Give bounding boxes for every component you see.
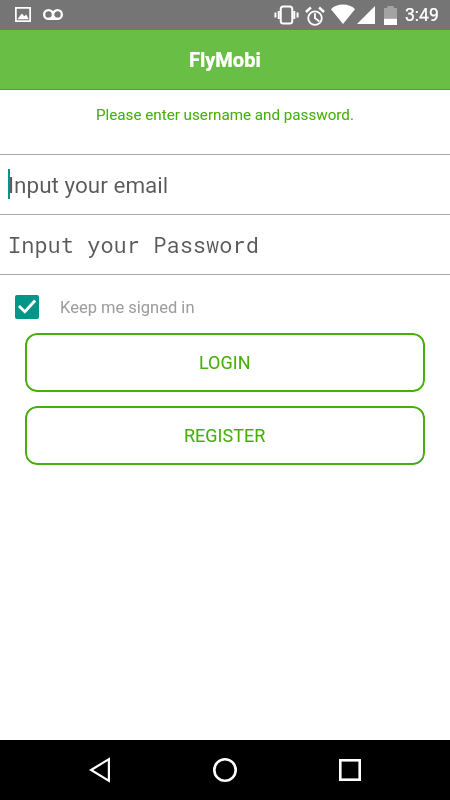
staticText: Please enter username and password.: [96, 106, 354, 124]
staticText: Input your email: [8, 172, 169, 198]
button[interactable]: LOGIN: [25, 333, 425, 392]
button[interactable]: Keep me signed in: [15, 295, 450, 319]
staticText: FlyMobi: [189, 48, 261, 71]
button[interactable]: Home: [187, 740, 263, 800]
staticText: Input your Password: [8, 230, 259, 259]
staticText: Keep me signed in: [60, 298, 195, 317]
staticText: REGISTER: [184, 425, 266, 446]
button[interactable]: Back: [62, 740, 138, 800]
button[interactable]: REGISTER: [25, 406, 425, 465]
button[interactable]: Input your Password: [0, 215, 450, 274]
staticText: LOGIN: [199, 352, 251, 373]
button[interactable]: Input your email: [0, 155, 450, 214]
button[interactable]: Recent apps: [312, 740, 388, 800]
staticText: 3:49: [405, 5, 439, 26]
